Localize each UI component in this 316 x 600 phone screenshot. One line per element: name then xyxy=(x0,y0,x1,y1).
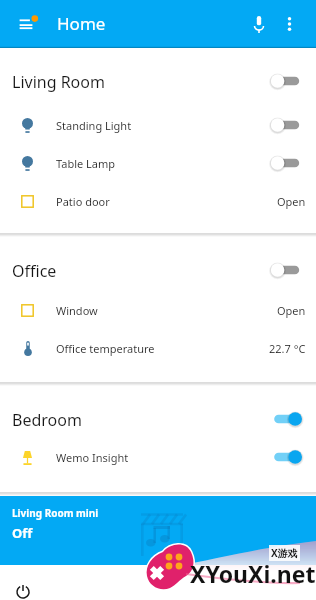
button[interactable]: Turn off xyxy=(271,447,301,467)
button[interactable]: Table Lamp xyxy=(0,144,316,182)
button[interactable]: Open navigation menu xyxy=(0,0,48,48)
button[interactable]: Standing Light xyxy=(0,106,316,144)
staticText: Office temperature xyxy=(56,341,155,356)
button[interactable]: Living Room xyxy=(0,70,316,94)
button[interactable]: Bedroom xyxy=(0,408,316,432)
button[interactable]: Turn on xyxy=(271,115,301,135)
button[interactable]: Wemo Insight xyxy=(0,438,316,476)
staticText: Office xyxy=(12,260,57,282)
button[interactable]: More options xyxy=(274,0,304,48)
button[interactable]: Turn on xyxy=(271,260,301,280)
staticText: Window xyxy=(56,303,98,318)
staticText: Off xyxy=(12,524,33,542)
staticText: Living Room xyxy=(12,71,105,93)
staticText: Bedroom xyxy=(12,409,82,431)
button[interactable]: Power xyxy=(5,574,41,600)
button[interactable]: Living Room mini xyxy=(0,496,316,565)
button[interactable]: Turn off xyxy=(271,409,301,429)
staticText: XYouXi.net xyxy=(190,558,316,589)
button[interactable]: Patio door xyxy=(0,182,316,220)
staticText: X游戏 xyxy=(271,546,298,560)
button[interactable]: Voice search xyxy=(244,0,274,48)
staticText: Open xyxy=(277,303,306,318)
staticText: Table Lamp xyxy=(56,156,116,171)
staticText: Standing Light xyxy=(56,118,132,133)
staticText: Home xyxy=(57,12,106,35)
staticText: Living Room mini xyxy=(12,506,99,520)
staticText: Wemo Insight xyxy=(56,450,129,465)
staticText: Open xyxy=(277,194,306,209)
button[interactable]: Turn on xyxy=(271,153,301,173)
button[interactable]: Window xyxy=(0,291,316,329)
button[interactable]: Office xyxy=(0,259,316,283)
staticText: 22.7 °C xyxy=(269,341,306,356)
staticText: Patio door xyxy=(56,194,110,209)
button[interactable]: Turn on xyxy=(271,71,301,91)
button[interactable]: Office temperature xyxy=(0,329,316,367)
